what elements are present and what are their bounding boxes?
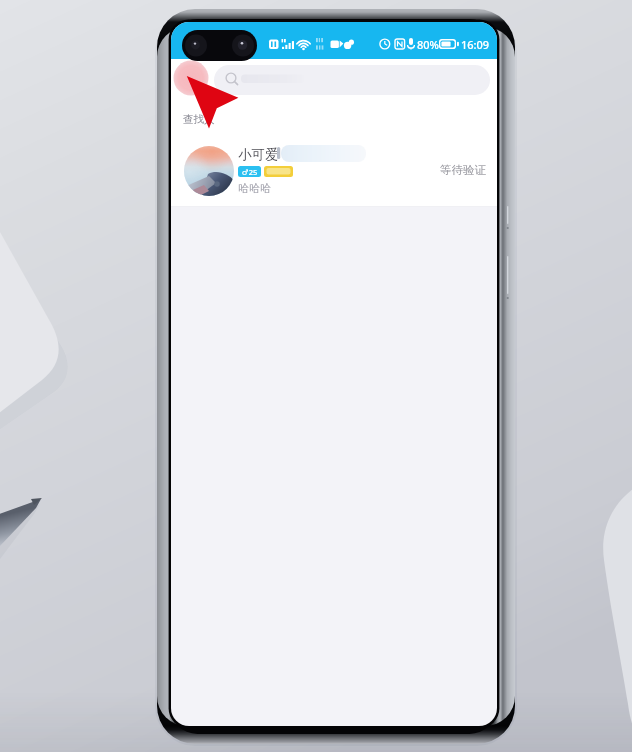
staticText: ♂25 [242,167,258,177]
staticText: 哈哈哈 [238,181,271,195]
button[interactable]: 小可爱 [171,132,497,206]
staticText: 小可爱 [238,146,279,163]
staticText: 等待验证 [440,163,486,177]
staticText: 80% [417,37,439,52]
staticText: 查找人 [183,113,215,126]
staticText: 16:09 [461,37,490,52]
button[interactable]: 搜索 [214,65,490,95]
